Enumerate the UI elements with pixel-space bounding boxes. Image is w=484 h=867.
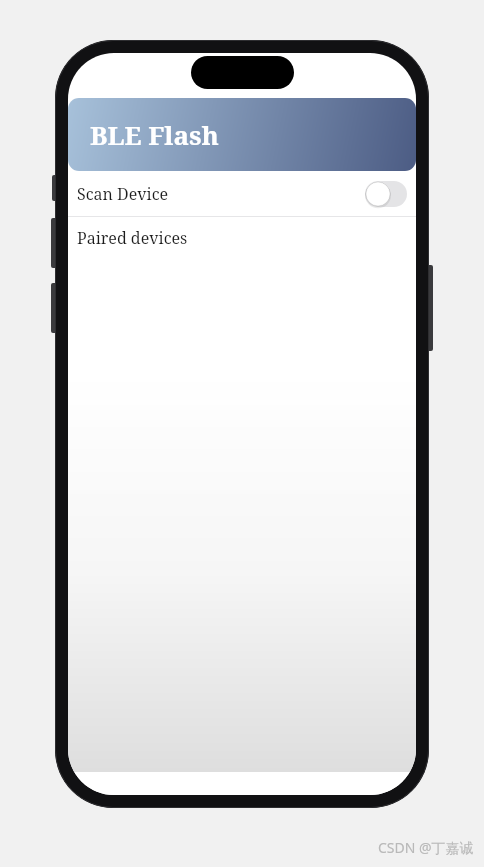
staticText: Scan Device bbox=[77, 183, 169, 205]
button[interactable]: BLE Flash bbox=[68, 98, 416, 171]
staticText: Paired devices bbox=[77, 227, 188, 249]
button[interactable]: Paired devices bbox=[68, 217, 416, 258]
button[interactable]: Scan Device bbox=[68, 171, 416, 216]
staticText: BLE Flash bbox=[90, 117, 219, 152]
button[interactable]: Scan Device toggle, off bbox=[365, 181, 407, 207]
staticText: CSDN @丁嘉诚 bbox=[378, 838, 474, 857]
